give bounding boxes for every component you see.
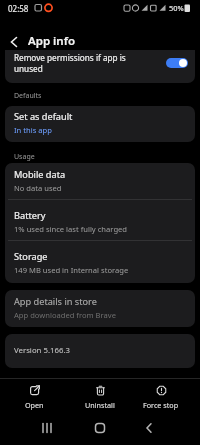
button[interactable]	[140, 419, 158, 437]
staticText: Uninstall	[85, 400, 115, 410]
staticText: 1% used since last fully charged	[14, 224, 128, 234]
button[interactable]	[91, 419, 109, 437]
staticText: Mobile data	[14, 168, 66, 181]
staticText: 50%	[169, 3, 184, 13]
button[interactable]: Remove permissions if app is	[5, 50, 195, 83]
staticText: Battery	[14, 209, 46, 222]
staticText: No data used	[14, 183, 62, 193]
button[interactable]	[38, 419, 56, 437]
staticText: Version 5.166.3	[14, 345, 70, 356]
button[interactable]: Open	[8, 384, 60, 416]
staticText: 02:58	[8, 3, 29, 14]
button[interactable]: Storage	[5, 240, 195, 283]
button[interactable]	[5, 33, 23, 51]
button[interactable]: Battery	[5, 200, 195, 240]
button[interactable]: Uninstall	[72, 384, 128, 416]
button[interactable]: Force stop	[133, 384, 189, 416]
button[interactable]: Set as default	[5, 106, 195, 142]
staticText: Remove permissions if app is	[14, 52, 126, 63]
staticText: Set as default	[14, 110, 73, 123]
staticText: App info	[28, 33, 76, 49]
staticText: App downloaded from Brave	[14, 310, 116, 320]
staticText: Open	[25, 400, 44, 410]
staticText: 149 MB used in Internal storage	[14, 265, 129, 275]
button[interactable]: App details in store	[5, 290, 195, 327]
staticText: Storage	[14, 250, 48, 263]
button[interactable]: Mobile data	[5, 163, 195, 200]
staticText: Defaults	[14, 91, 42, 101]
staticText: Usage	[14, 152, 35, 162]
staticText: Force stop	[143, 400, 179, 410]
staticText: In this app	[14, 125, 52, 135]
staticText: unused	[14, 63, 43, 74]
staticText: App details in store	[14, 295, 97, 308]
